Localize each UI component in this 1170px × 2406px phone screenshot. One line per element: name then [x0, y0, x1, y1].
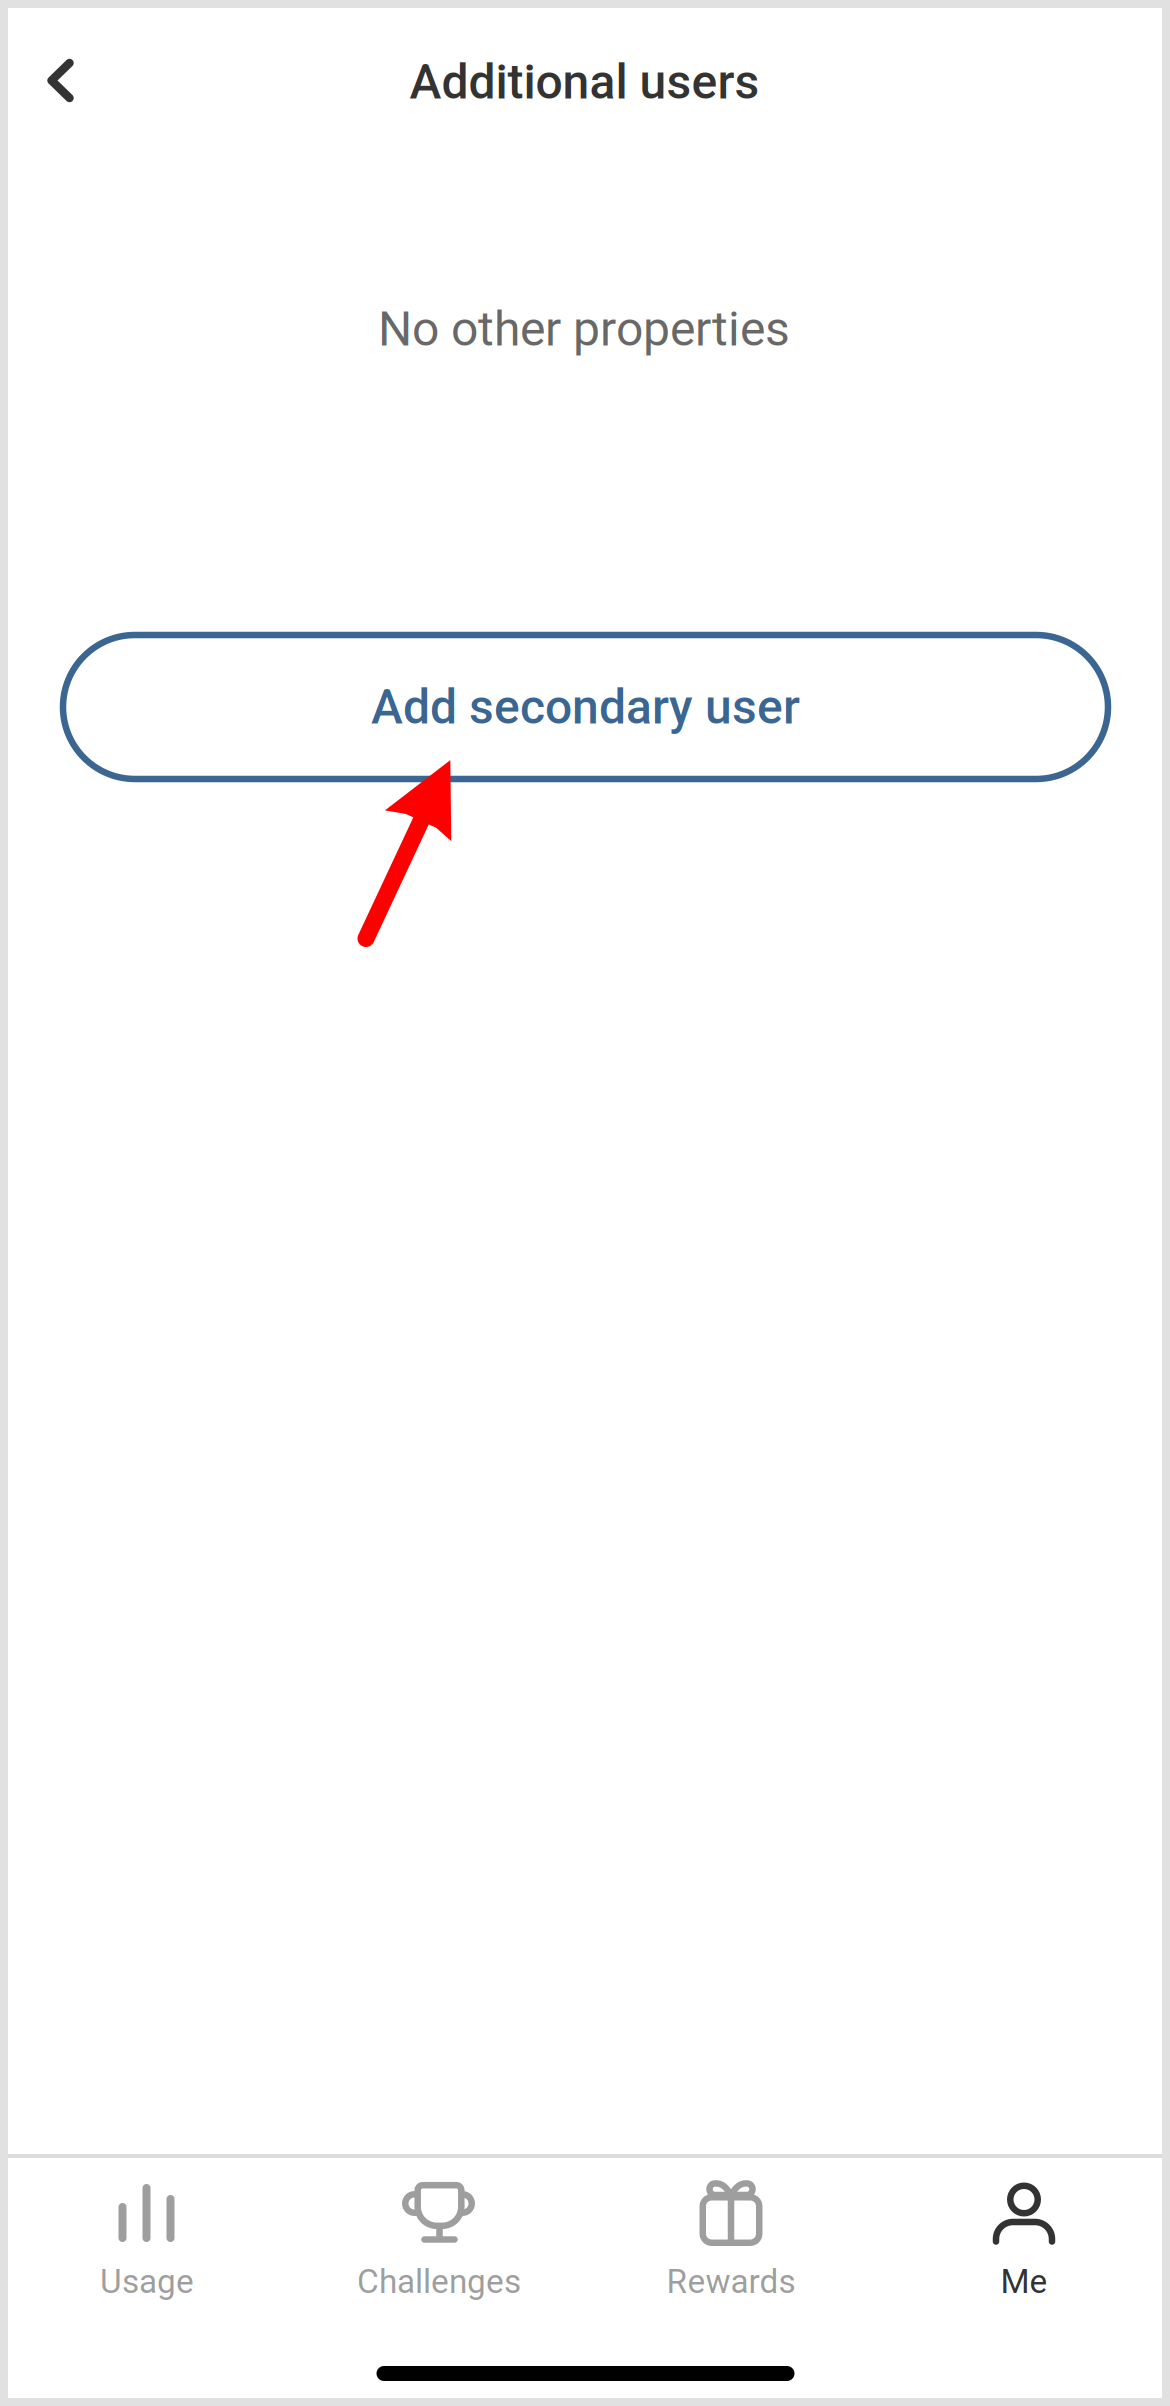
button[interactable]: Me [878, 2166, 1170, 2306]
button[interactable]: Usage [1, 2166, 293, 2306]
staticText: Challenges [357, 2262, 521, 2301]
staticText: No other properties [378, 301, 790, 357]
button[interactable]: Rewards [585, 2166, 877, 2306]
staticText: Add secondary user [371, 679, 800, 735]
staticText: Additional users [409, 54, 759, 110]
staticText: Rewards [666, 2262, 795, 2301]
button[interactable]: Add secondary user [63, 635, 1108, 779]
staticText: Me [1000, 2262, 1047, 2301]
button[interactable]: Challenges [293, 2166, 585, 2306]
button[interactable]: Back [12, 32, 108, 128]
staticText: Usage [100, 2262, 194, 2301]
